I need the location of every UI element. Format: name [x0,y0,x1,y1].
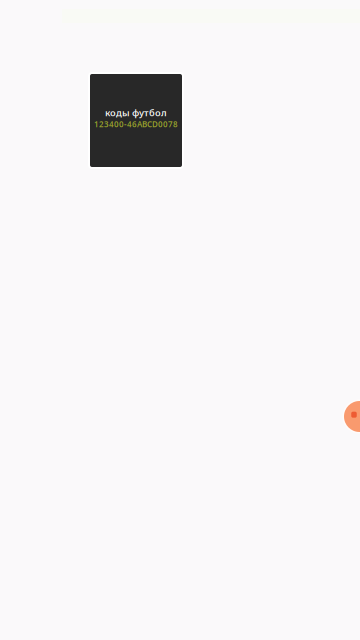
button[interactable]: коды футбол [88,72,184,169]
button[interactable]: Compose [342,399,360,433]
staticText: 123400-46ABCD0078 [94,119,178,129]
staticText: коды футбол [105,106,167,119]
